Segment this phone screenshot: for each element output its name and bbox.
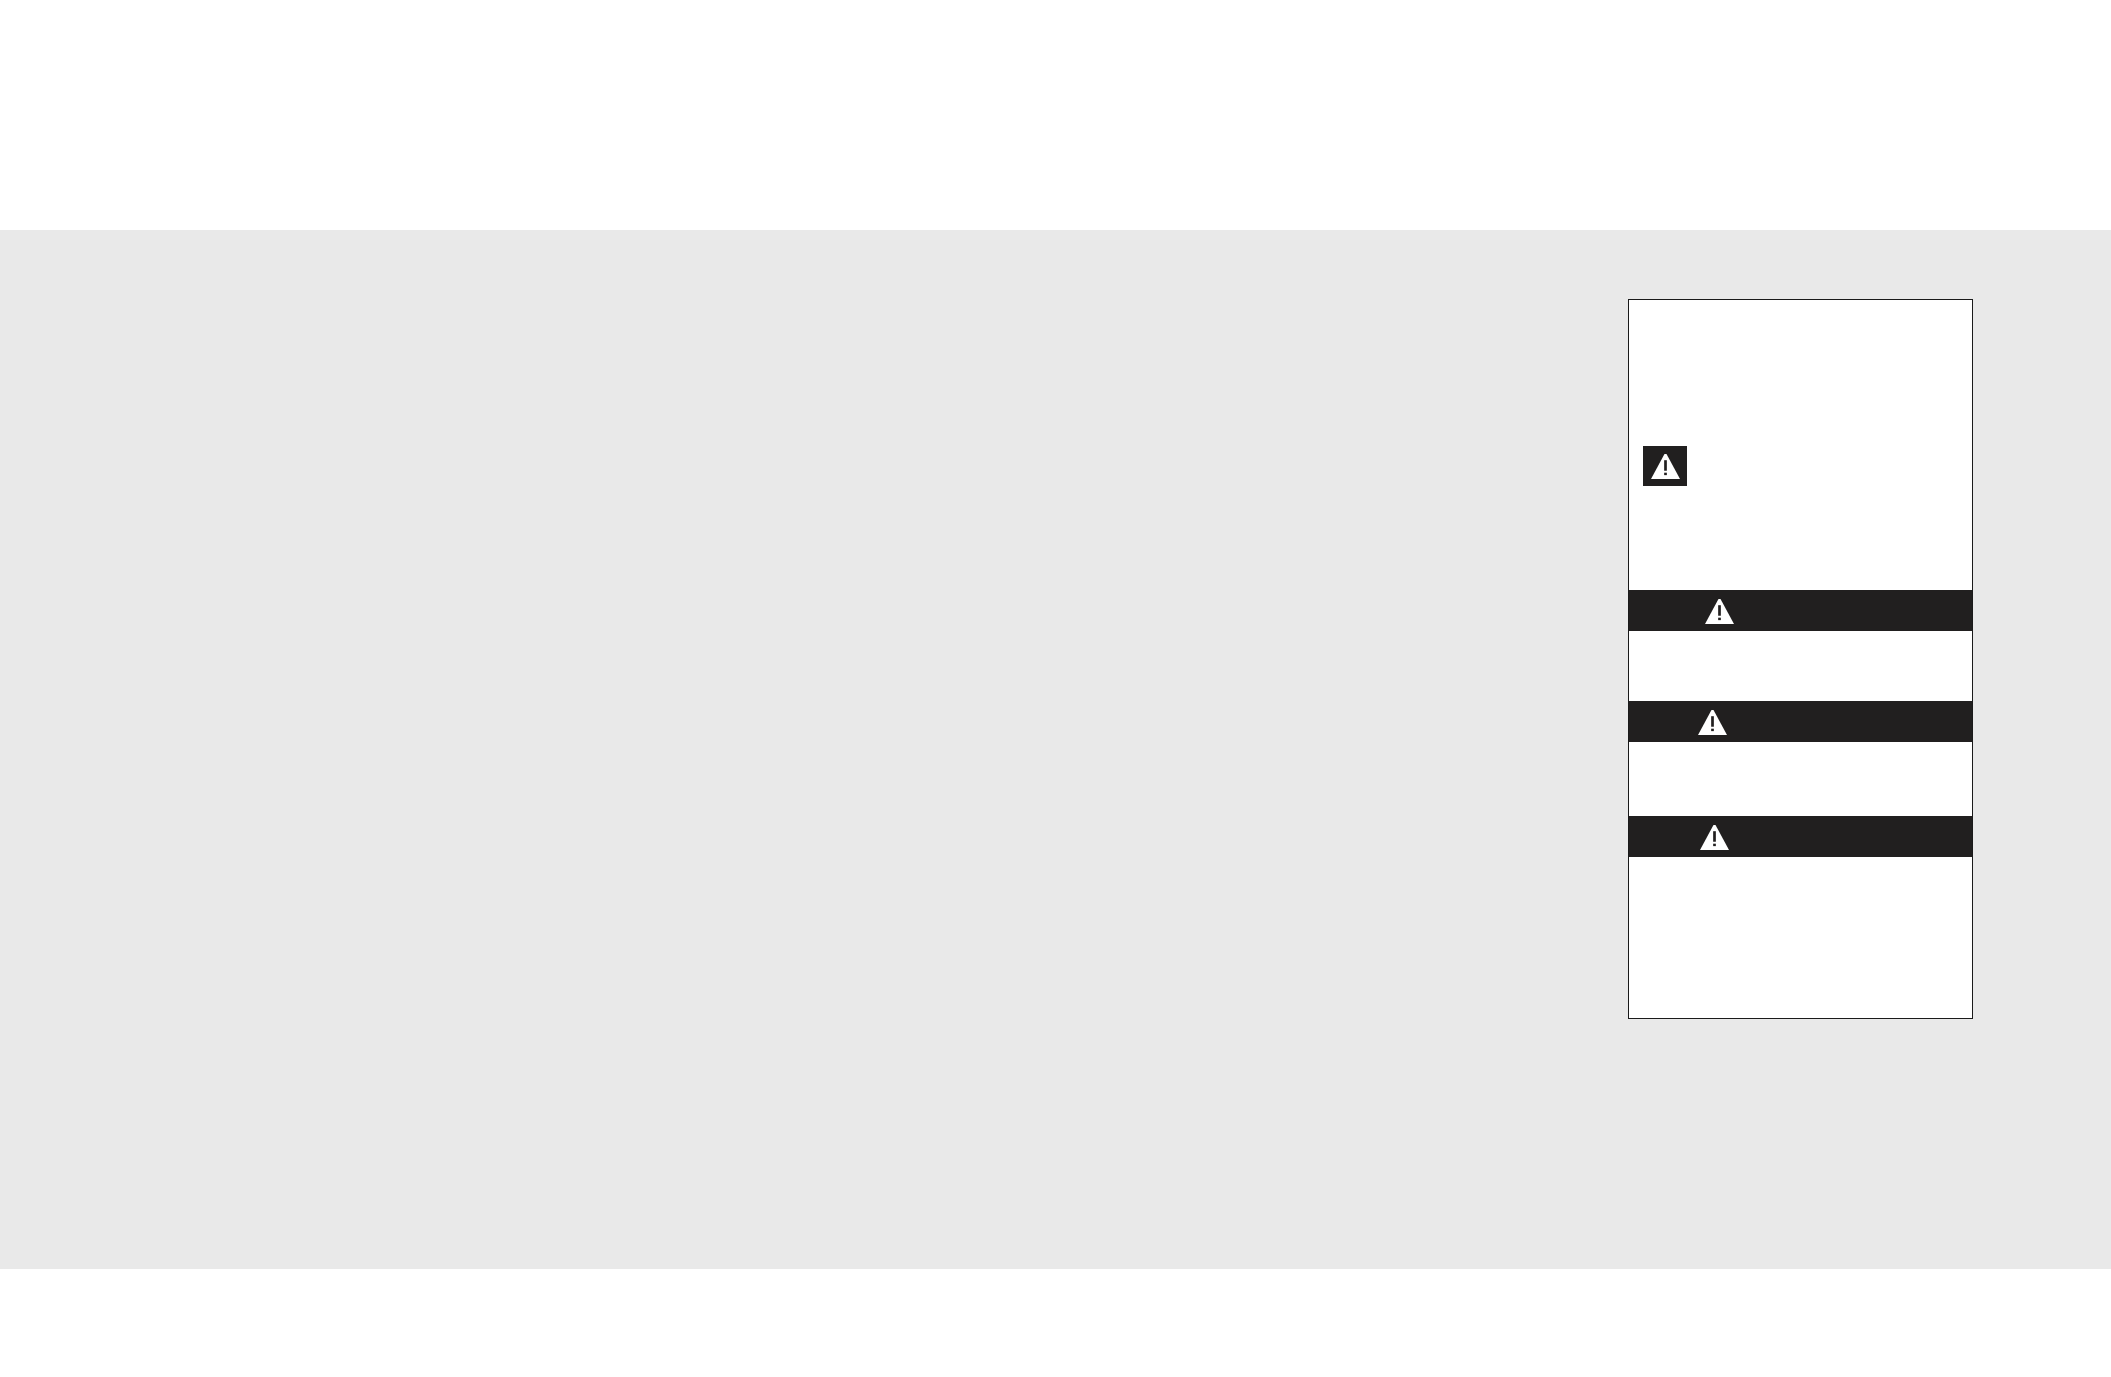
button[interactable]: Warning (1628, 701, 1973, 742)
button[interactable]: Warning (1628, 816, 1973, 857)
button[interactable]: Warning (1643, 446, 1687, 486)
button[interactable]: Warning (1628, 299, 1973, 1019)
button[interactable]: Warning (1628, 590, 1973, 631)
